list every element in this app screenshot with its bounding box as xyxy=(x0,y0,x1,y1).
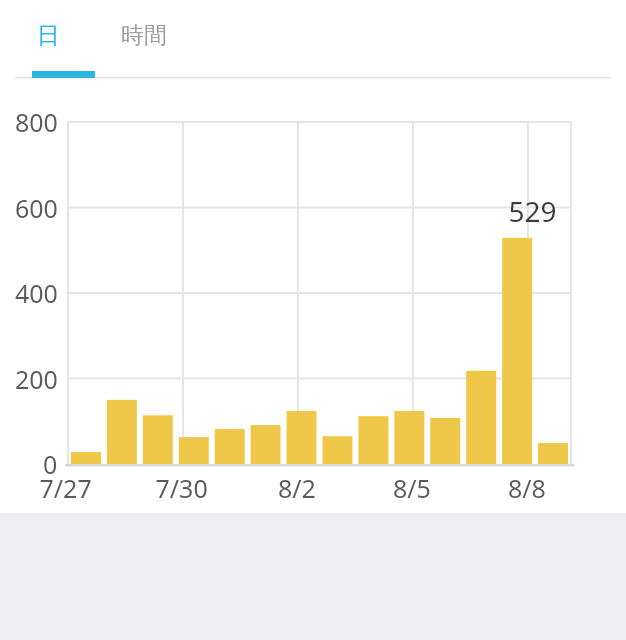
button[interactable]: 日 xyxy=(0,0,96,70)
button[interactable]: 時間 xyxy=(96,0,192,70)
staticText: 日 xyxy=(37,21,60,50)
staticText: 時間 xyxy=(121,21,167,50)
